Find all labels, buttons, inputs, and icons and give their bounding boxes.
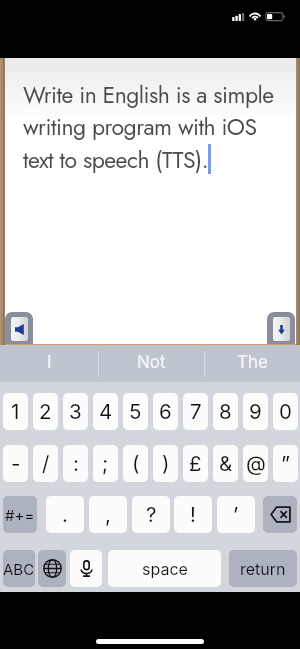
button[interactable]: 4 (93, 393, 118, 430)
staticText: ” (281, 451, 291, 476)
staticText: / (42, 451, 50, 476)
button[interactable]: £ (183, 445, 208, 482)
button[interactable]: Scroll down (267, 312, 295, 344)
staticText: £ (189, 451, 202, 476)
button[interactable]: ; (93, 445, 118, 482)
button[interactable]: space (108, 550, 221, 587)
staticText: The (237, 352, 268, 373)
staticText: . (62, 502, 68, 527)
staticText: 4 (99, 399, 113, 424)
button[interactable]: ” (273, 445, 298, 482)
button[interactable]: 6 (153, 393, 178, 430)
button[interactable]: . (46, 496, 84, 533)
button[interactable]: : (63, 445, 88, 482)
staticText: : (73, 451, 79, 476)
staticText: 5 (129, 399, 142, 424)
button[interactable]: 3 (63, 393, 88, 430)
button[interactable]: / (33, 445, 58, 482)
staticText: 7 (190, 399, 202, 424)
staticText: I (47, 352, 52, 373)
staticText: 0 (279, 399, 292, 424)
staticText: & (219, 451, 233, 476)
button[interactable]: ) (153, 445, 178, 482)
button[interactable]: #+= (3, 496, 37, 533)
staticText: @ (246, 451, 266, 476)
button[interactable]: 7 (183, 393, 208, 430)
staticText: 2 (39, 399, 52, 424)
button[interactable]: 8 (213, 393, 238, 430)
staticText: - (11, 451, 21, 476)
staticText: space (142, 559, 188, 578)
staticText: 8 (219, 399, 232, 424)
button[interactable]: I (0, 345, 98, 382)
staticText: ) (162, 451, 170, 476)
staticText: ! (190, 502, 196, 527)
staticText: 6 (159, 399, 172, 424)
staticText: ( (132, 451, 140, 476)
button[interactable]: Speak text (5, 312, 33, 344)
button[interactable]: & (213, 445, 238, 482)
staticText: 9 (249, 399, 262, 424)
staticText: 3 (69, 399, 82, 424)
button[interactable]: Change keyboard (38, 550, 66, 587)
button[interactable]: 1 (3, 393, 28, 430)
staticText: ABC (3, 560, 35, 578)
button[interactable]: ! (174, 496, 212, 533)
button[interactable]: ? (132, 496, 170, 533)
button[interactable]: Dictate (70, 550, 102, 587)
button[interactable]: - (3, 445, 28, 482)
staticText: ? (146, 502, 157, 527)
staticText: ’ (233, 502, 239, 527)
button[interactable]: ( (123, 445, 148, 482)
staticText: 1 (11, 399, 20, 424)
button[interactable]: ABC (3, 550, 35, 587)
button[interactable]: The (205, 345, 300, 382)
staticText: , (105, 502, 111, 527)
button[interactable]: Backspace (263, 496, 297, 533)
button[interactable]: 2 (33, 393, 58, 430)
button[interactable]: ’ (217, 496, 255, 533)
staticText: return (240, 559, 286, 578)
staticText: #+= (5, 506, 35, 524)
button[interactable]: 9 (243, 393, 268, 430)
button[interactable]: 0 (273, 393, 298, 430)
button[interactable]: @ (243, 445, 268, 482)
staticText: Not (137, 352, 166, 373)
button[interactable]: return (229, 550, 297, 587)
button[interactable]: Not (99, 345, 204, 382)
button[interactable]: 5 (123, 393, 148, 430)
staticText: ; (102, 451, 109, 476)
staticText: Write in English is a simple writing pro… (23, 78, 274, 177)
button[interactable]: , (89, 496, 127, 533)
